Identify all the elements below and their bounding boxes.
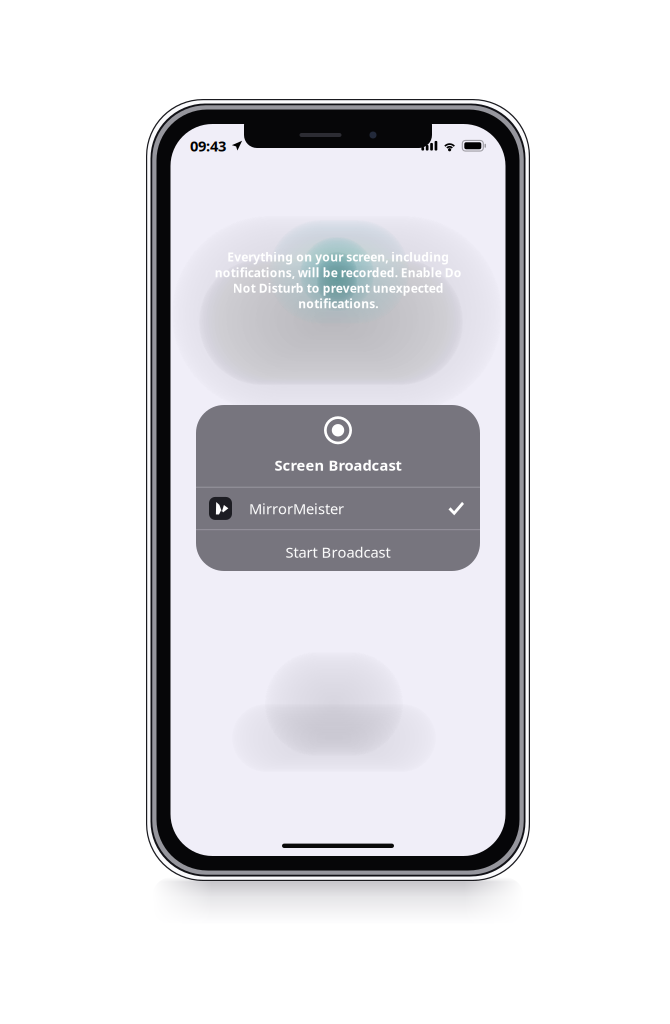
staticText: Everything on your screen, including not…: [214, 249, 461, 311]
button[interactable]: MirrorMeister: [196, 488, 480, 529]
staticText: 09:43: [190, 136, 226, 155]
staticText: Screen Broadcast: [274, 455, 401, 475]
staticText: MirrorMeister: [249, 499, 344, 518]
button[interactable]: Start Broadcast: [196, 530, 480, 574]
staticText: Start Broadcast: [285, 542, 390, 562]
